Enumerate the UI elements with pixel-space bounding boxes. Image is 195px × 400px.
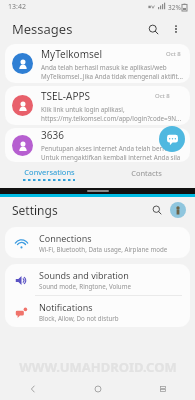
- button[interactable]: 3636: [5, 128, 190, 162]
- staticText: Oct 8: [166, 50, 181, 58]
- staticText: Klik link untuk login aplikasi,: [41, 105, 125, 114]
- button[interactable]: More options: [165, 18, 187, 40]
- staticText: Conversations: [24, 167, 75, 177]
- staticText: 13:42: [8, 2, 26, 12]
- staticText: WWW.UMAHDROID.COM: [19, 358, 177, 376]
- staticText: Contacts: [131, 168, 162, 178]
- staticText: MyTelkomsel: [41, 47, 102, 61]
- staticText: Messages: [12, 20, 73, 38]
- button[interactable]: Account profile: [170, 202, 186, 218]
- button[interactable]: Connections: [5, 227, 190, 258]
- button[interactable]: Sounds and vibration: [5, 264, 190, 295]
- staticText: Wi-Fi, Bluetooth, Data usage, Airplane m…: [39, 245, 168, 253]
- staticText: TSEL-APPS: [41, 89, 91, 103]
- staticText: Oct 8: [155, 92, 170, 100]
- staticText: MyTelkomsel..Jika Anda tidak mengenali a…: [41, 72, 183, 81]
- staticText: 3636: [41, 128, 64, 142]
- button[interactable]: Contacts: [97, 162, 195, 186]
- button[interactable]: MyTelkomsel: [5, 44, 190, 83]
- button[interactable]: Search settings: [146, 199, 168, 221]
- staticText: Untuk mengaktifkan kembali internet Anda…: [41, 153, 181, 162]
- button[interactable]: Home: [65, 378, 130, 400]
- button[interactable]: New conversation: [159, 126, 185, 152]
- button[interactable]: Notifications: [5, 296, 190, 327]
- staticText: Sounds and vibration: [39, 269, 129, 281]
- button[interactable]: TSEL-APPS: [5, 86, 190, 125]
- staticText: Penutupan akses internet Anda telah berh…: [41, 144, 178, 153]
- button[interactable]: Search: [141, 17, 165, 41]
- button[interactable]: Back: [0, 378, 65, 400]
- staticText: Connections: [39, 232, 92, 244]
- staticText: Block, Allow, Do not disturb: [39, 314, 119, 322]
- staticText: https://my.telkomsel.com/app/login?code=…: [41, 114, 182, 123]
- button[interactable]: Conversations: [0, 162, 97, 186]
- staticText: Anda telah berhasil masuk ke aplikasi/we…: [41, 63, 167, 72]
- staticText: Notifications: [39, 301, 93, 313]
- staticText: 32%: [168, 3, 181, 12]
- staticText: Settings: [12, 202, 58, 218]
- staticText: Sound mode, Ringtone, Volume: [39, 282, 131, 290]
- button[interactable]: Recent apps: [130, 378, 195, 400]
